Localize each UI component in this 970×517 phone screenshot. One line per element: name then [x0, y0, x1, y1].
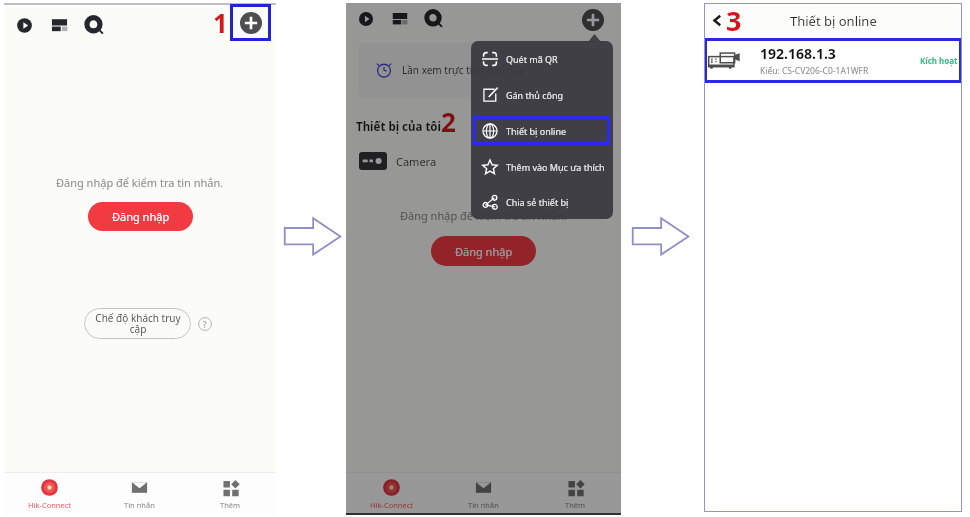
button[interactable]: Help — [198, 317, 212, 331]
button[interactable]: Gán thủ công — [482, 77, 613, 113]
staticText: Camera — [396, 154, 437, 169]
button[interactable]: Tin nhắn — [437, 473, 529, 515]
staticText: Quét mã QR — [506, 53, 558, 65]
staticText: Lần xem trực tiếp gần đây — [402, 63, 525, 77]
staticText: Gán thủ công — [506, 89, 564, 101]
staticText: Thiết bị online — [790, 12, 877, 30]
button[interactable]: Search — [424, 9, 444, 29]
button[interactable]: Chia sẻ thiết bị — [482, 185, 613, 219]
button[interactable]: Quét mã QR — [482, 41, 613, 77]
button[interactable]: Thêm vào Mục ưa thích — [482, 149, 613, 185]
staticText: 1 — [213, 5, 228, 40]
staticText: Thêm vào Mục ưa thích — [506, 161, 605, 173]
staticText: Tin nhắn — [468, 500, 499, 510]
staticText: Đăng nhập để kiểm tra tin nhắn. — [56, 175, 224, 190]
button[interactable]: Layout — [49, 15, 70, 36]
button[interactable]: Tin nhắn — [94, 473, 185, 515]
staticText: Hik-Connect — [28, 500, 71, 510]
button[interactable]: Camera — [359, 152, 437, 170]
staticText: 2 — [441, 104, 456, 139]
button[interactable]: Thêm — [185, 473, 276, 515]
staticText: Đăng nhập — [112, 209, 170, 224]
button[interactable]: Live view — [14, 15, 35, 36]
button[interactable]: Thiết bị online — [482, 113, 613, 149]
button[interactable]: Search — [84, 15, 105, 36]
button[interactable]: Add device — [582, 9, 604, 31]
button[interactable]: 192.168.1.3 — [708, 38, 958, 83]
staticText: Kích hoạt — [920, 55, 958, 66]
staticText: Thiết bị của tôi — [356, 119, 441, 135]
button[interactable]: Layout — [390, 9, 410, 29]
button[interactable]: Hik-Connect — [346, 473, 437, 515]
staticText: Đăng nhập để kiểm tra tin nhắn. — [400, 208, 568, 223]
button[interactable]: Thêm — [529, 473, 621, 515]
staticText: Đăng nhập — [455, 244, 513, 259]
button[interactable]: Đăng nhập — [88, 202, 193, 231]
button[interactable]: Hik-Connect — [4, 473, 94, 515]
staticText: Hik-Connect — [370, 500, 413, 510]
staticText: ? — [203, 319, 207, 330]
button[interactable]: Add device — [240, 12, 262, 34]
button[interactable]: Chế độ khách truy cập — [84, 308, 191, 339]
button[interactable]: Live view — [356, 9, 376, 29]
staticText: Thêm — [220, 500, 241, 510]
staticText: Chế độ khách truy cập — [93, 311, 183, 336]
staticText: Tin nhắn — [124, 500, 155, 510]
button[interactable]: Back — [709, 12, 726, 29]
staticText: Chia sẻ thiết bị — [506, 196, 569, 208]
staticText: Thêm — [565, 500, 586, 510]
button[interactable]: Đăng nhập — [431, 236, 536, 266]
staticText: Thiết bị online — [506, 125, 567, 137]
staticText: 3 — [726, 2, 742, 37]
staticText: Kiểu: CS-CV206-C0-1A1WFR — [760, 65, 869, 77]
button[interactable]: Lần xem trực tiếp gần đây — [359, 43, 608, 97]
staticText: 192.168.1.3 — [760, 44, 836, 63]
